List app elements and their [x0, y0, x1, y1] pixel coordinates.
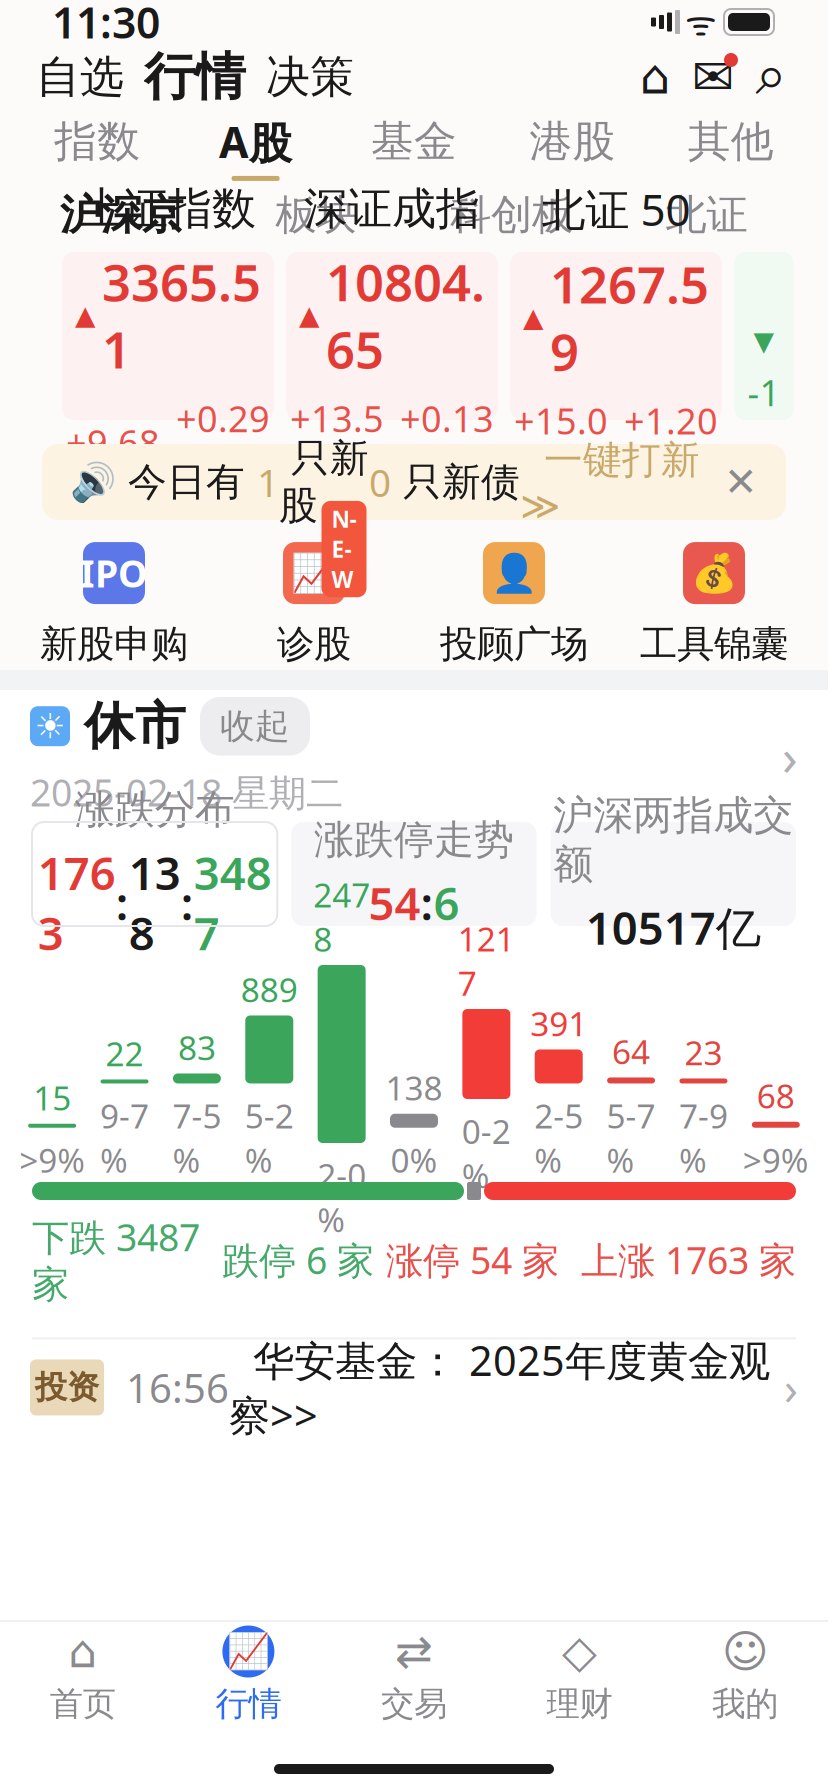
staticText: A股: [219, 113, 292, 170]
staticText: 889: [241, 967, 298, 1011]
staticText: 2025-02-18 星期二: [30, 767, 343, 817]
staticText: 0%: [390, 1138, 437, 1182]
staticText: 沪深京: [60, 190, 183, 240]
staticText: ☺: [722, 1626, 769, 1677]
staticText: +13.59: [290, 394, 384, 490]
staticText: 今日有: [128, 458, 257, 506]
button[interactable]: 上证指数: [62, 252, 274, 420]
staticText: 2-5%: [534, 1093, 583, 1182]
staticText: 涨跌分布: [75, 785, 235, 834]
staticText: ▼: [753, 326, 774, 356]
button[interactable]: 北证: [609, 184, 804, 246]
staticText: 7-9%: [679, 1093, 728, 1182]
button[interactable]: 涨跌分布: [32, 822, 277, 926]
button[interactable]: 指数: [18, 110, 176, 184]
staticText: 68: [757, 1073, 795, 1118]
button[interactable]: ☀: [0, 690, 828, 822]
staticText: 👤: [491, 552, 537, 594]
staticText: NEW: [331, 504, 356, 594]
staticText: 工具锦囊: [640, 621, 788, 667]
button[interactable]: Assistant: [628, 50, 682, 104]
staticText: 涨停 54 家: [386, 1235, 559, 1284]
staticText: ›: [784, 1357, 798, 1417]
staticText: 138: [385, 1065, 442, 1110]
staticText: 北证 50: [541, 180, 690, 238]
staticText: 7-5%: [172, 1093, 221, 1182]
staticText: ᯤ: [685, 0, 717, 45]
staticText: >9%: [743, 1138, 809, 1182]
button[interactable]: 板块: [219, 184, 414, 246]
button[interactable]: Messages: [682, 50, 744, 104]
staticText: 北证: [665, 190, 747, 240]
staticText: 10517亿: [586, 897, 761, 957]
button[interactable]: 涨跌停走势: [291, 822, 537, 926]
staticText: :: [420, 872, 433, 933]
staticText: 投资: [35, 1368, 99, 1407]
staticText: 391: [530, 1001, 587, 1045]
button[interactable]: 📈: [214, 537, 414, 667]
button[interactable]: Search: [744, 50, 798, 104]
staticText: 涨跌停走势: [314, 815, 514, 864]
button[interactable]: 👤: [414, 537, 614, 667]
button[interactable]: ⇄: [331, 1628, 497, 1722]
staticText: 15: [33, 1075, 71, 1120]
button[interactable]: 🔊: [0, 444, 828, 520]
staticText: 💰: [691, 552, 737, 594]
staticText: 上涨 1763 家: [559, 1235, 796, 1284]
staticText: 0-2%: [462, 1109, 511, 1197]
button[interactable]: 自选: [30, 50, 130, 104]
staticText: 决策: [266, 50, 354, 104]
button[interactable]: 决策: [260, 50, 360, 104]
staticText: 6: [433, 872, 459, 933]
button[interactable]: 北证 50: [510, 252, 722, 420]
staticText: ▲: [299, 300, 320, 330]
staticText: +15.07: [514, 397, 608, 492]
staticText: +0.29%: [176, 394, 270, 490]
staticText: 理财: [547, 1683, 613, 1724]
staticText: 交易: [381, 1683, 447, 1724]
staticText: 港股: [529, 115, 615, 168]
staticText: 10804.65: [326, 248, 485, 382]
staticText: 1763: [38, 842, 116, 963]
staticText: 一键打新 ≫: [520, 436, 700, 528]
staticText: 3365.51: [102, 248, 261, 382]
staticText: ⇄: [395, 1626, 433, 1677]
staticText: 休市: [84, 695, 186, 757]
button[interactable]: 其他: [652, 110, 810, 184]
staticText: 华安基金： 2025年度黄金观察>>: [229, 1332, 770, 1442]
staticText: 收起: [220, 705, 290, 747]
staticText: 1217: [458, 916, 515, 1005]
button[interactable]: 行情: [130, 46, 260, 108]
button[interactable]: 📈: [166, 1628, 331, 1722]
staticText: ☀: [34, 706, 65, 746]
staticText: +9.68: [66, 418, 160, 466]
button[interactable]: ◇: [497, 1628, 662, 1722]
staticText: 行情: [144, 46, 246, 108]
staticText: 只新股，: [279, 434, 369, 529]
staticText: -1: [747, 368, 780, 416]
button[interactable]: 港股: [493, 110, 652, 184]
staticText: 22: [105, 1031, 143, 1075]
staticText: ◇: [562, 1626, 597, 1677]
button[interactable]: 沪深两指成交额: [551, 822, 796, 926]
button[interactable]: 沪深京: [24, 184, 219, 246]
button[interactable]: A股: [176, 110, 335, 184]
button[interactable]: 深证成指: [286, 252, 498, 420]
staticText: +0.13%: [400, 394, 494, 490]
button[interactable]: 投资: [0, 1339, 828, 1435]
staticText: ▲: [75, 300, 96, 330]
button[interactable]: IPO: [14, 537, 214, 667]
staticText: 自选: [36, 50, 124, 104]
staticText: 2478: [313, 872, 370, 961]
button[interactable]: 科创板: [414, 184, 609, 246]
button[interactable]: ⌂: [0, 1628, 166, 1722]
staticText: 5-7%: [607, 1093, 656, 1182]
button[interactable]: 💰: [614, 537, 814, 667]
button[interactable]: 基金: [335, 110, 493, 184]
staticText: 1267.59: [550, 250, 709, 385]
button[interactable]: ☺: [662, 1628, 828, 1722]
staticText: 新股申购: [40, 621, 188, 667]
staticText: 64: [612, 1029, 650, 1073]
staticText: IPO: [80, 548, 148, 598]
